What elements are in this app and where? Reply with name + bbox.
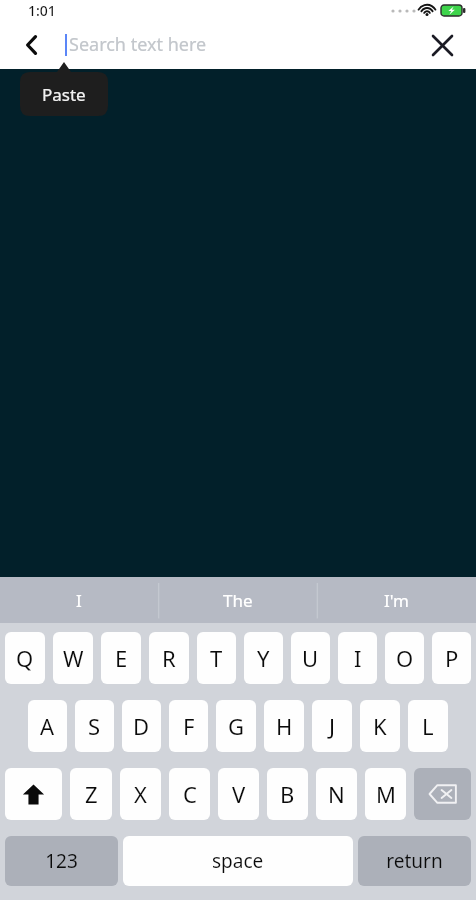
staticText: Search text here [69,32,207,57]
staticText: K [373,711,387,741]
button[interactable]: Z [70,768,112,820]
button[interactable]: space [123,836,353,886]
button[interactable]: W [53,632,93,684]
button[interactable]: E [101,632,141,684]
staticText: 123 [45,848,78,874]
staticText: I [354,643,362,673]
staticText: U [302,643,319,673]
button[interactable]: G [216,700,256,752]
button[interactable]: Y [244,632,283,684]
button[interactable]: O [385,632,424,684]
button[interactable]: D [122,700,161,752]
button[interactable]: T [197,632,236,684]
button[interactable]: C [169,768,210,820]
button[interactable]: The [158,577,317,623]
staticText: T [210,643,223,673]
button[interactable]: U [291,632,330,684]
button[interactable]: 123 [5,836,118,886]
button[interactable]: Backspace [414,768,471,820]
staticText: D [133,711,150,741]
button[interactable]: I [338,632,377,684]
staticText: F [183,711,195,741]
staticText: L [422,711,434,741]
staticText: E [115,643,128,673]
button[interactable]: Shift [5,768,62,820]
button[interactable]: V [218,768,259,820]
button[interactable]: Back [8,21,56,69]
button[interactable]: I [0,577,158,623]
button[interactable]: L [408,700,448,752]
staticText: B [280,779,295,809]
button[interactable]: A [28,700,67,752]
button[interactable]: X [120,768,161,820]
button[interactable]: H [264,700,304,752]
staticText: Q [16,643,34,673]
staticText: H [276,711,293,741]
button[interactable]: K [360,700,400,752]
button[interactable]: Paste [20,62,108,116]
staticText: return [386,848,443,874]
staticText: C [183,779,197,809]
staticText: 1:01 [28,1,56,20]
staticText: I'm [384,589,409,612]
button[interactable]: J [312,700,352,752]
button[interactable]: F [169,700,208,752]
staticText: M [376,779,396,809]
staticText: Z [85,779,98,809]
staticText: N [328,779,345,809]
staticText: V [232,779,246,809]
staticText: J [329,711,336,741]
staticText: S [88,711,101,741]
staticText: X [134,779,147,809]
staticText: P [445,643,459,673]
staticText: I [76,589,82,612]
staticText: G [228,711,245,741]
button[interactable]: S [75,700,114,752]
button[interactable]: P [432,632,471,684]
staticText: W [63,643,84,673]
button[interactable]: Q [5,632,45,684]
staticText: space [212,848,264,874]
staticText: O [396,643,414,673]
button[interactable]: I'm [317,577,476,623]
staticText: The [223,589,253,612]
button[interactable]: M [365,768,406,820]
staticText: Y [257,643,270,673]
button[interactable]: return [358,836,471,886]
button[interactable]: Clear search [418,21,466,69]
button[interactable]: B [267,768,308,820]
staticText: R [162,643,176,673]
staticText: Paste [42,83,86,106]
staticText: A [40,711,55,741]
button[interactable]: N [316,768,357,820]
button[interactable]: R [149,632,189,684]
